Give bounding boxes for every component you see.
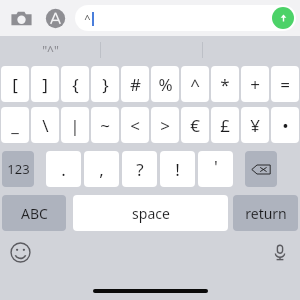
button[interactable]: *	[211, 66, 239, 102]
button[interactable]: ]	[31, 66, 59, 102]
button[interactable]: {	[61, 66, 89, 102]
staticText: <	[130, 114, 140, 137]
staticText: %	[158, 73, 173, 96]
staticText: =	[280, 73, 290, 96]
staticText: }	[102, 73, 109, 96]
button[interactable]: Backspace	[245, 151, 277, 187]
button[interactable]: }	[91, 66, 119, 102]
button[interactable]: £	[211, 107, 239, 143]
button[interactable]: ^	[75, 5, 296, 31]
button[interactable]: ABC	[2, 195, 66, 231]
staticText: return	[245, 204, 287, 223]
button[interactable]: <	[121, 107, 149, 143]
staticText: [	[12, 73, 18, 96]
staticText: •	[282, 114, 289, 137]
staticText: 123	[7, 160, 30, 178]
button[interactable]: +	[241, 66, 269, 102]
button[interactable]: •	[271, 107, 299, 143]
button[interactable]: .	[46, 151, 81, 187]
button[interactable]: Send	[272, 7, 294, 29]
staticText: ?	[136, 158, 144, 181]
button[interactable]: "^"	[0, 36, 100, 64]
staticText: ABC	[21, 204, 48, 223]
button[interactable]: ,	[84, 151, 119, 187]
button[interactable]: €	[181, 107, 209, 143]
staticText: !	[175, 158, 180, 181]
staticText: .	[61, 158, 66, 181]
button[interactable]: App Store	[42, 5, 68, 31]
staticText: "^"	[42, 42, 59, 58]
staticText: €	[190, 114, 200, 137]
button[interactable]: =	[271, 66, 299, 102]
staticText: \	[42, 114, 49, 137]
staticText: ]	[42, 73, 48, 96]
button[interactable]: |	[61, 107, 89, 143]
button[interactable]: ¥	[241, 107, 269, 143]
button[interactable]: ^	[181, 66, 209, 102]
staticText: >	[160, 114, 170, 137]
staticText: ~	[100, 114, 110, 137]
staticText: £	[220, 114, 230, 137]
button[interactable]: !	[160, 151, 195, 187]
button[interactable]: ?	[122, 151, 157, 187]
button[interactable]: _	[1, 107, 29, 143]
button[interactable]: [	[1, 66, 29, 102]
button[interactable]: Camera	[8, 5, 34, 31]
button[interactable]: Dictation	[267, 239, 293, 265]
staticText: *	[220, 73, 230, 96]
button[interactable]: space	[73, 195, 228, 231]
button[interactable]: ~	[91, 107, 119, 143]
button[interactable]: 123	[2, 151, 34, 187]
button[interactable]: return	[233, 195, 298, 231]
staticText: #	[130, 73, 141, 96]
button[interactable]: %	[151, 66, 179, 102]
staticText: ¥	[250, 114, 260, 137]
button[interactable]: #	[121, 66, 149, 102]
staticText: {	[72, 73, 79, 96]
staticText: ,	[99, 158, 104, 181]
button[interactable]: \	[31, 107, 59, 143]
button[interactable]: Emoji	[7, 239, 33, 265]
staticText: |	[70, 114, 80, 137]
staticText: _	[11, 114, 19, 137]
staticText: space	[132, 204, 170, 223]
staticText: '	[214, 155, 218, 178]
staticText: ^	[84, 11, 91, 26]
button[interactable]: '	[198, 151, 233, 187]
button[interactable]: >	[151, 107, 179, 143]
staticText: ^	[190, 73, 200, 96]
staticText: +	[250, 73, 260, 96]
